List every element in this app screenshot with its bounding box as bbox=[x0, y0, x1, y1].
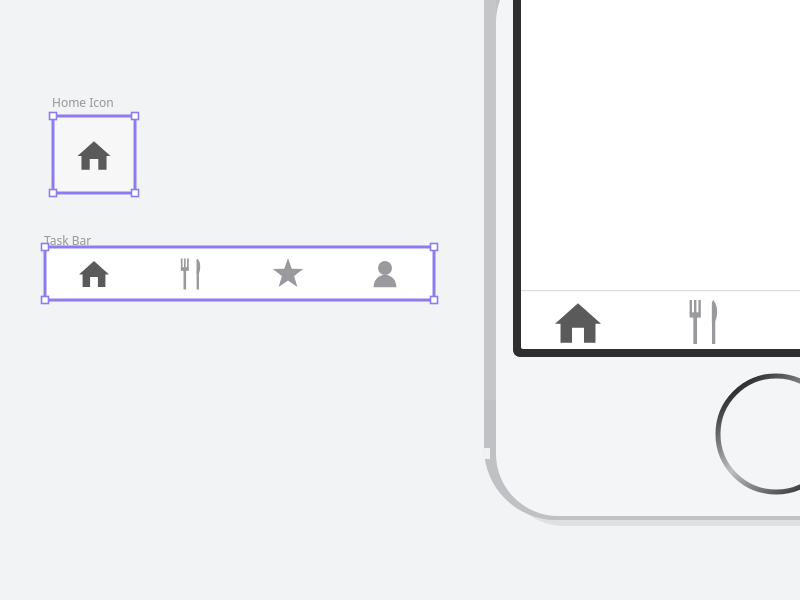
button[interactable]: Profile bbox=[336, 247, 433, 300]
staticText: Task Bar bbox=[44, 232, 92, 248]
button[interactable]: Home bbox=[45, 247, 142, 300]
button[interactable]: Restaurants bbox=[142, 247, 239, 300]
button[interactable]: Home icon artboard bbox=[53, 116, 135, 193]
staticText: Home Icon bbox=[52, 94, 114, 110]
button[interactable]: Favorites bbox=[239, 247, 336, 300]
